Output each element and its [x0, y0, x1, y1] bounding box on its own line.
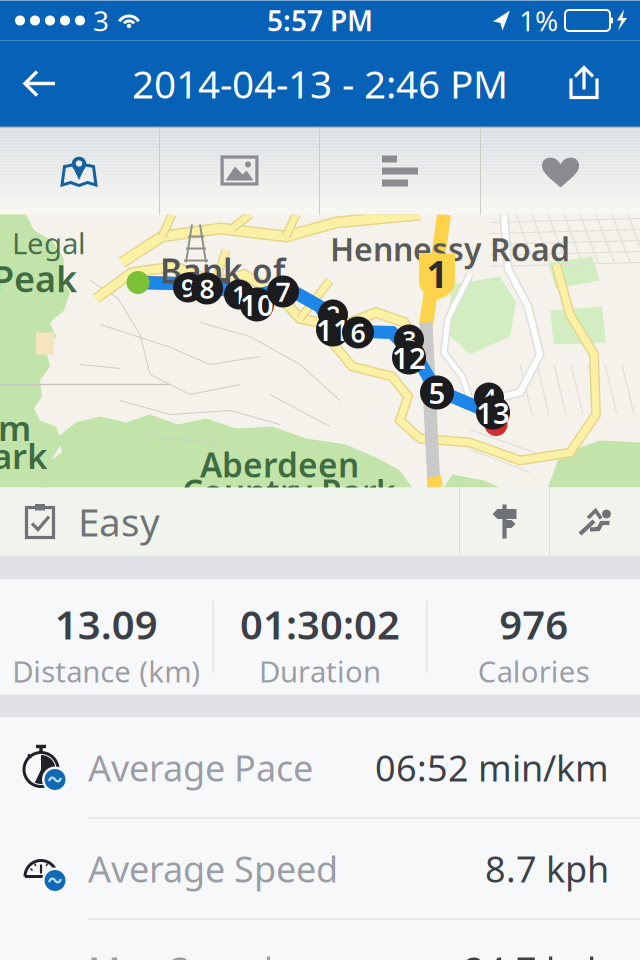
staticText: 11: [316, 310, 350, 349]
staticText: 8.7 kph: [485, 845, 609, 892]
button[interactable]: Route: [460, 487, 549, 555]
button[interactable]: Easy: [0, 487, 459, 555]
staticText: 9: [181, 271, 195, 304]
staticText: 12: [392, 338, 426, 377]
staticText: Distance (km): [12, 652, 200, 691]
staticText: 2: [326, 298, 340, 331]
staticText: 7: [275, 274, 290, 309]
staticText: 976: [499, 597, 568, 651]
staticText: Country Park: [182, 469, 396, 514]
staticText: 3: [93, 2, 109, 39]
button[interactable]: Share: [552, 40, 640, 126]
staticText: Calories: [478, 652, 590, 691]
staticText: 06:52 min/km: [375, 744, 609, 791]
staticText: 8: [199, 271, 214, 306]
staticText: 5: [428, 373, 445, 412]
staticText: 1: [426, 249, 447, 298]
staticText: 10: [240, 285, 274, 324]
staticText: 1%: [519, 2, 558, 39]
staticText: 5:57 PM: [267, 2, 373, 39]
button[interactable]: Photos: [160, 127, 319, 214]
staticText: Aberdeen: [200, 442, 359, 487]
staticText: Average Pace: [88, 744, 313, 791]
staticText: 6: [350, 315, 365, 350]
staticText: 24.7 kph: [464, 946, 609, 960]
staticText: ark: [0, 432, 47, 478]
staticText: 13: [476, 393, 510, 432]
staticText: 01:30:02: [240, 597, 400, 651]
staticText: Legal: [12, 223, 86, 262]
staticText: Hennessy Road: [330, 227, 570, 270]
staticText: m: [0, 404, 31, 450]
button[interactable]: Map: [0, 127, 159, 214]
staticText: 1: [232, 278, 246, 311]
staticText: Duration: [259, 652, 381, 691]
staticText: 3: [402, 323, 416, 356]
staticText: 4: [482, 381, 496, 414]
staticText: Bank of: [160, 248, 285, 293]
staticText: 13.09: [55, 597, 158, 651]
button[interactable]: Activity type: [550, 487, 640, 555]
button[interactable]: Average Speed: [0, 818, 640, 918]
staticText: 2014-04-13 - 2:46 PM: [132, 58, 508, 109]
staticText: Easy: [78, 496, 160, 547]
button[interactable]: Max Speed: [0, 919, 640, 960]
staticText: Max Speed: [88, 946, 273, 960]
button[interactable]: Heart rate: [481, 127, 640, 214]
button[interactable]: Average Pace: [0, 717, 640, 817]
staticText: Peak: [0, 254, 77, 302]
staticText: Average Speed: [88, 845, 338, 892]
button[interactable]: Back: [0, 40, 73, 126]
button[interactable]: Splits: [320, 127, 480, 214]
